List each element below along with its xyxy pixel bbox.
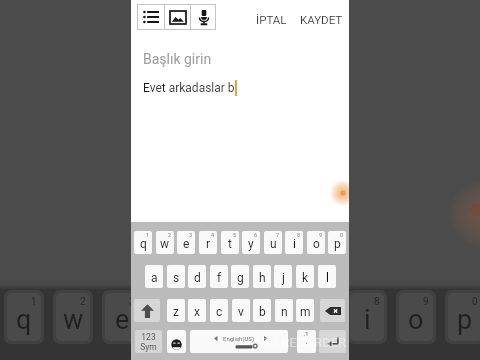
button[interactable]: v — [232, 299, 250, 322]
staticText: j — [282, 271, 285, 285]
staticText: p — [334, 237, 341, 251]
staticText: 4 — [178, 296, 184, 308]
staticText: o — [408, 304, 424, 336]
staticText: q — [16, 304, 32, 336]
button[interactable]: Enter — [319, 330, 346, 353]
button[interactable]: a — [145, 265, 163, 288]
staticText: 9 — [319, 232, 323, 238]
button[interactable]: Insert image — [165, 4, 190, 30]
button[interactable]: Space — [190, 330, 288, 353]
button[interactable]: d — [188, 265, 206, 288]
staticText: w — [160, 237, 170, 251]
staticText: 1 — [146, 232, 150, 238]
button[interactable]: KAYDET — [300, 8, 343, 30]
staticText: u — [311, 304, 326, 336]
button[interactable]: 1 — [134, 231, 152, 254]
button[interactable]: n — [275, 299, 293, 322]
staticText: z — [173, 305, 179, 319]
staticText: 6 — [276, 296, 282, 308]
button[interactable]: Checklist — [137, 4, 164, 30]
staticText: w — [63, 304, 84, 336]
button[interactable]: Emoji — [167, 330, 186, 353]
button[interactable]: 2 — [156, 231, 174, 254]
staticText: s — [173, 271, 180, 285]
staticText: 2 — [168, 232, 172, 238]
staticText: 5 — [233, 232, 237, 238]
staticText: p — [457, 304, 473, 336]
staticText: t — [228, 237, 232, 251]
staticText: o — [313, 237, 320, 251]
button[interactable]: m — [296, 299, 314, 322]
staticText: 0 — [340, 232, 344, 238]
staticText: 7 — [325, 296, 331, 308]
staticText: m — [300, 305, 311, 319]
staticText: Başlık girin — [143, 51, 212, 67]
button[interactable]: b — [253, 299, 271, 322]
staticText: 8 — [374, 296, 380, 308]
button[interactable]: Voice note — [191, 4, 216, 30]
button[interactable]: f — [210, 265, 228, 288]
staticText: 5 — [227, 296, 233, 308]
staticText: v — [238, 305, 244, 319]
staticText: DU RECORDER — [261, 335, 346, 350]
staticText: u — [270, 237, 277, 251]
staticText: 3 — [129, 296, 135, 308]
staticText: 6 — [254, 232, 258, 238]
button[interactable]: 9 — [307, 231, 325, 254]
button[interactable]: k — [296, 265, 314, 288]
staticText: . — [305, 334, 308, 347]
staticText: e — [183, 237, 190, 251]
staticText: a — [151, 271, 158, 285]
staticText: i — [364, 304, 371, 336]
staticText: 7 — [276, 232, 280, 238]
staticText: e — [115, 304, 130, 336]
button[interactable]: 0 — [328, 231, 346, 254]
staticText: KAYDET — [300, 13, 343, 26]
staticText: l — [326, 271, 329, 285]
staticText: y — [263, 304, 276, 336]
staticText: i — [293, 237, 296, 251]
staticText: r — [206, 237, 211, 251]
staticText: 4 — [211, 232, 215, 238]
staticText: q — [140, 237, 147, 251]
button[interactable]: 7 — [264, 231, 282, 254]
staticText: x — [194, 305, 200, 319]
button[interactable]: x — [188, 299, 206, 322]
button[interactable]: l — [318, 265, 336, 288]
button[interactable]: 4 — [199, 231, 217, 254]
button[interactable]: g — [231, 265, 249, 288]
staticText: 9 — [423, 296, 429, 308]
button[interactable]: 8 — [285, 231, 303, 254]
staticText: g — [237, 271, 244, 285]
staticText: k — [302, 271, 309, 285]
staticText: d — [194, 271, 201, 285]
button[interactable]: c — [210, 299, 228, 322]
button[interactable]: j — [274, 265, 292, 288]
staticText: English(US) — [223, 335, 255, 342]
staticText: 8 — [297, 232, 301, 238]
button[interactable]: 5 — [221, 231, 239, 254]
staticText: f — [217, 271, 222, 285]
staticText: İPTAL — [256, 13, 287, 26]
button[interactable]: z — [167, 299, 185, 322]
button[interactable]: 3 — [177, 231, 195, 254]
staticText: r — [166, 304, 176, 336]
staticText: ,?! — [304, 331, 309, 337]
staticText: 2 — [80, 296, 86, 308]
staticText: 123 Sym — [140, 332, 157, 352]
staticText: Evet arkadaslar b — [143, 81, 235, 95]
button[interactable]: Shift — [134, 299, 160, 322]
button[interactable]: 6 — [242, 231, 260, 254]
staticText: 0 — [472, 296, 478, 308]
staticText: t — [216, 304, 225, 336]
button[interactable]: İPTAL — [256, 8, 287, 30]
button[interactable]: . — [297, 330, 316, 353]
button[interactable]: Backspace — [320, 299, 345, 322]
staticText: n — [281, 305, 288, 319]
staticText: h — [259, 271, 266, 285]
button[interactable]: h — [253, 265, 271, 288]
button[interactable]: 123 Sym — [135, 330, 162, 353]
staticText: 3 — [189, 232, 193, 238]
button[interactable]: s — [167, 265, 185, 288]
staticText: c — [216, 305, 223, 319]
